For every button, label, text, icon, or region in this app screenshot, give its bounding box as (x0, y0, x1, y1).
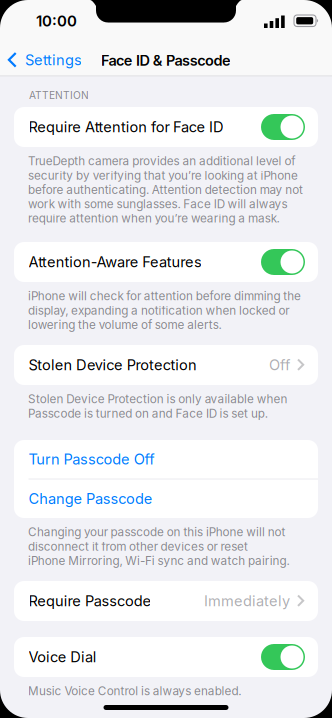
staticText: iPhone will check for attention before d… (28, 289, 301, 332)
staticText: Attention-Aware Features (28, 253, 202, 271)
button[interactable] (261, 644, 305, 670)
button[interactable]: Require Attention for Face ID (14, 107, 318, 147)
staticText: Change Passcode (28, 490, 153, 508)
staticText: Require Passcode (28, 592, 151, 610)
button[interactable]: Turn Passcode Off (14, 440, 318, 518)
button[interactable]: Require Passcode (14, 581, 318, 621)
staticText: Changing your passcode on this iPhone wi… (28, 525, 289, 568)
staticText: ATTENTION (29, 89, 89, 101)
staticText: Immediately (204, 592, 290, 610)
staticText: Require Attention for Face ID (28, 118, 224, 136)
staticText: TrueDepth camera provides an additional … (28, 154, 303, 225)
staticText: Stolen Device Protection is only availab… (28, 392, 287, 420)
staticText: Turn Passcode Off (28, 450, 154, 468)
staticText: Music Voice Control is always enabled. (28, 684, 241, 698)
staticText: 10:00 (36, 12, 77, 30)
button[interactable] (261, 249, 305, 275)
staticText: Stolen Device Protection (28, 356, 197, 374)
button[interactable]: Attention-Aware Features (14, 242, 318, 282)
button[interactable]: Settings (7, 51, 82, 69)
button[interactable]: Stolen Device Protection (14, 345, 318, 385)
staticText: Settings (25, 51, 82, 69)
staticText: Off (269, 356, 290, 374)
staticText: Face ID & Passcode (101, 52, 231, 69)
staticText: Voice Dial (28, 648, 97, 666)
button[interactable]: Voice Dial (14, 637, 318, 677)
button[interactable] (261, 114, 305, 140)
